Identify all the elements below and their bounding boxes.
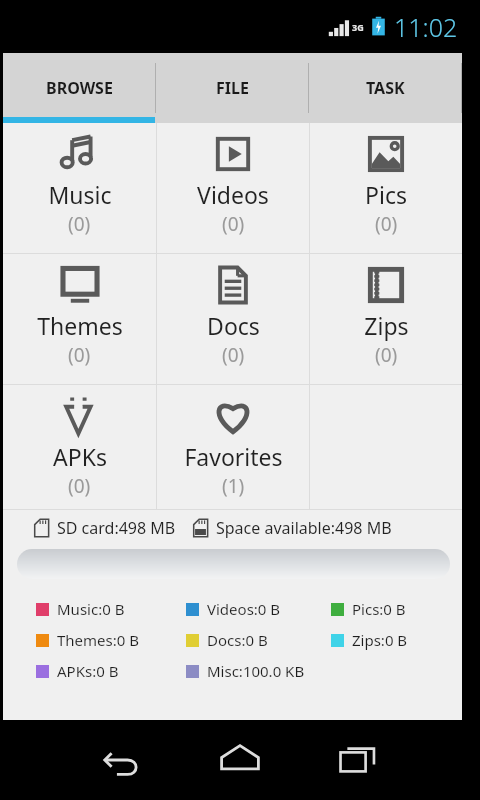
button[interactable]: Music bbox=[3, 123, 156, 253]
staticText: (0) bbox=[375, 211, 398, 237]
staticText: SD card:498 MB bbox=[57, 517, 176, 539]
button[interactable]: Home bbox=[205, 725, 275, 795]
button[interactable]: APKs bbox=[3, 385, 156, 509]
staticText: Videos:0 B bbox=[207, 599, 281, 619]
staticText: Music bbox=[48, 179, 112, 210]
staticText: Docs bbox=[207, 310, 260, 341]
button[interactable]: Videos bbox=[157, 123, 309, 253]
staticText: (0) bbox=[222, 342, 245, 368]
button[interactable]: FILE bbox=[156, 53, 308, 123]
staticText: (0) bbox=[222, 211, 245, 237]
staticText: Space available:498 MB bbox=[216, 517, 392, 539]
button[interactable]: TASK bbox=[309, 53, 461, 123]
staticText: Music:0 B bbox=[57, 599, 125, 619]
button[interactable]: Themes bbox=[3, 254, 156, 384]
staticText: BROWSE bbox=[46, 77, 113, 99]
staticText: Docs:0 B bbox=[207, 630, 268, 650]
staticText: 11:02 bbox=[394, 10, 458, 44]
staticText: Themes bbox=[37, 310, 123, 341]
button[interactable]: Pics bbox=[310, 123, 462, 253]
staticText: Pics:0 B bbox=[352, 599, 406, 619]
staticText: Zips bbox=[364, 310, 409, 341]
button[interactable]: Recent apps bbox=[323, 725, 393, 795]
staticText: (1) bbox=[222, 473, 245, 499]
staticText: Zips:0 B bbox=[352, 630, 408, 650]
staticText: TASK bbox=[366, 77, 405, 99]
button[interactable]: Docs bbox=[157, 254, 309, 384]
button[interactable]: Back bbox=[88, 725, 158, 795]
staticText: APKs:0 B bbox=[57, 661, 119, 681]
staticText: APKs bbox=[53, 441, 107, 472]
staticText: Favorites bbox=[184, 441, 283, 472]
staticText: Videos bbox=[197, 179, 269, 210]
staticText: (0) bbox=[68, 473, 91, 499]
staticText: Misc:100.0 KB bbox=[207, 661, 305, 681]
button[interactable]: Zips bbox=[310, 254, 462, 384]
button[interactable]: BROWSE bbox=[3, 53, 155, 123]
staticText: Themes:0 B bbox=[57, 630, 139, 650]
staticText: (0) bbox=[68, 342, 91, 368]
staticText: Pics bbox=[365, 179, 407, 210]
staticText: (0) bbox=[68, 211, 91, 237]
button[interactable]: Favorites bbox=[157, 385, 309, 509]
staticText: FILE bbox=[216, 77, 249, 99]
staticText: (0) bbox=[375, 342, 398, 368]
staticText: 3G bbox=[352, 21, 364, 33]
